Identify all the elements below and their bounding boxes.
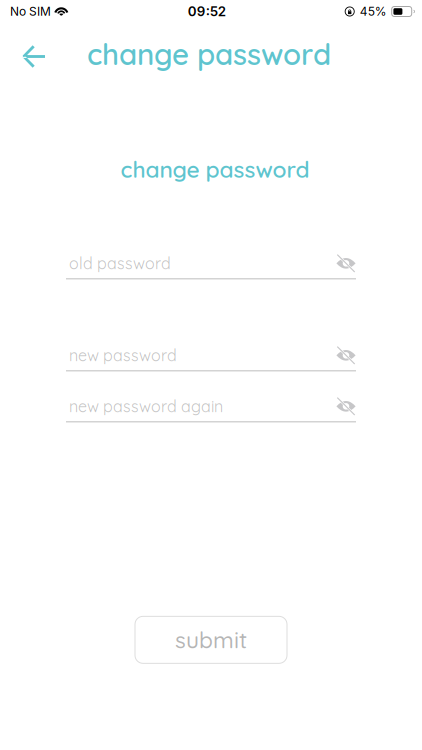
staticText: 45%: [360, 4, 387, 19]
button[interactable]: Show new password again: [324, 391, 356, 421]
button[interactable]: Show new password: [324, 340, 356, 370]
staticText: submit: [175, 626, 247, 654]
staticText: old password: [69, 253, 171, 273]
staticText: new password again: [69, 396, 223, 416]
button[interactable]: submit: [135, 616, 287, 663]
staticText: No SIM: [10, 4, 51, 19]
staticText: new password: [69, 345, 177, 365]
staticText: change password: [87, 36, 331, 72]
button[interactable]: Back: [11, 32, 57, 76]
staticText: 09:52: [188, 3, 226, 19]
button[interactable]: Show old password: [324, 248, 356, 278]
staticText: change password: [120, 155, 309, 183]
